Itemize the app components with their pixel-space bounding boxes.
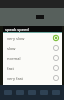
staticText: very fast (7, 76, 53, 81)
button[interactable]: very slow (3, 33, 62, 43)
button[interactable]: fast (3, 63, 62, 73)
staticText: fast (7, 66, 53, 71)
button[interactable]: very fast (3, 73, 62, 83)
staticText: speak speed (5, 27, 29, 32)
button[interactable]: slow (3, 43, 62, 53)
staticText: very slow (7, 36, 53, 41)
staticText: slow (7, 46, 53, 51)
button[interactable]: normal (3, 53, 62, 63)
staticText: normal (7, 56, 53, 61)
